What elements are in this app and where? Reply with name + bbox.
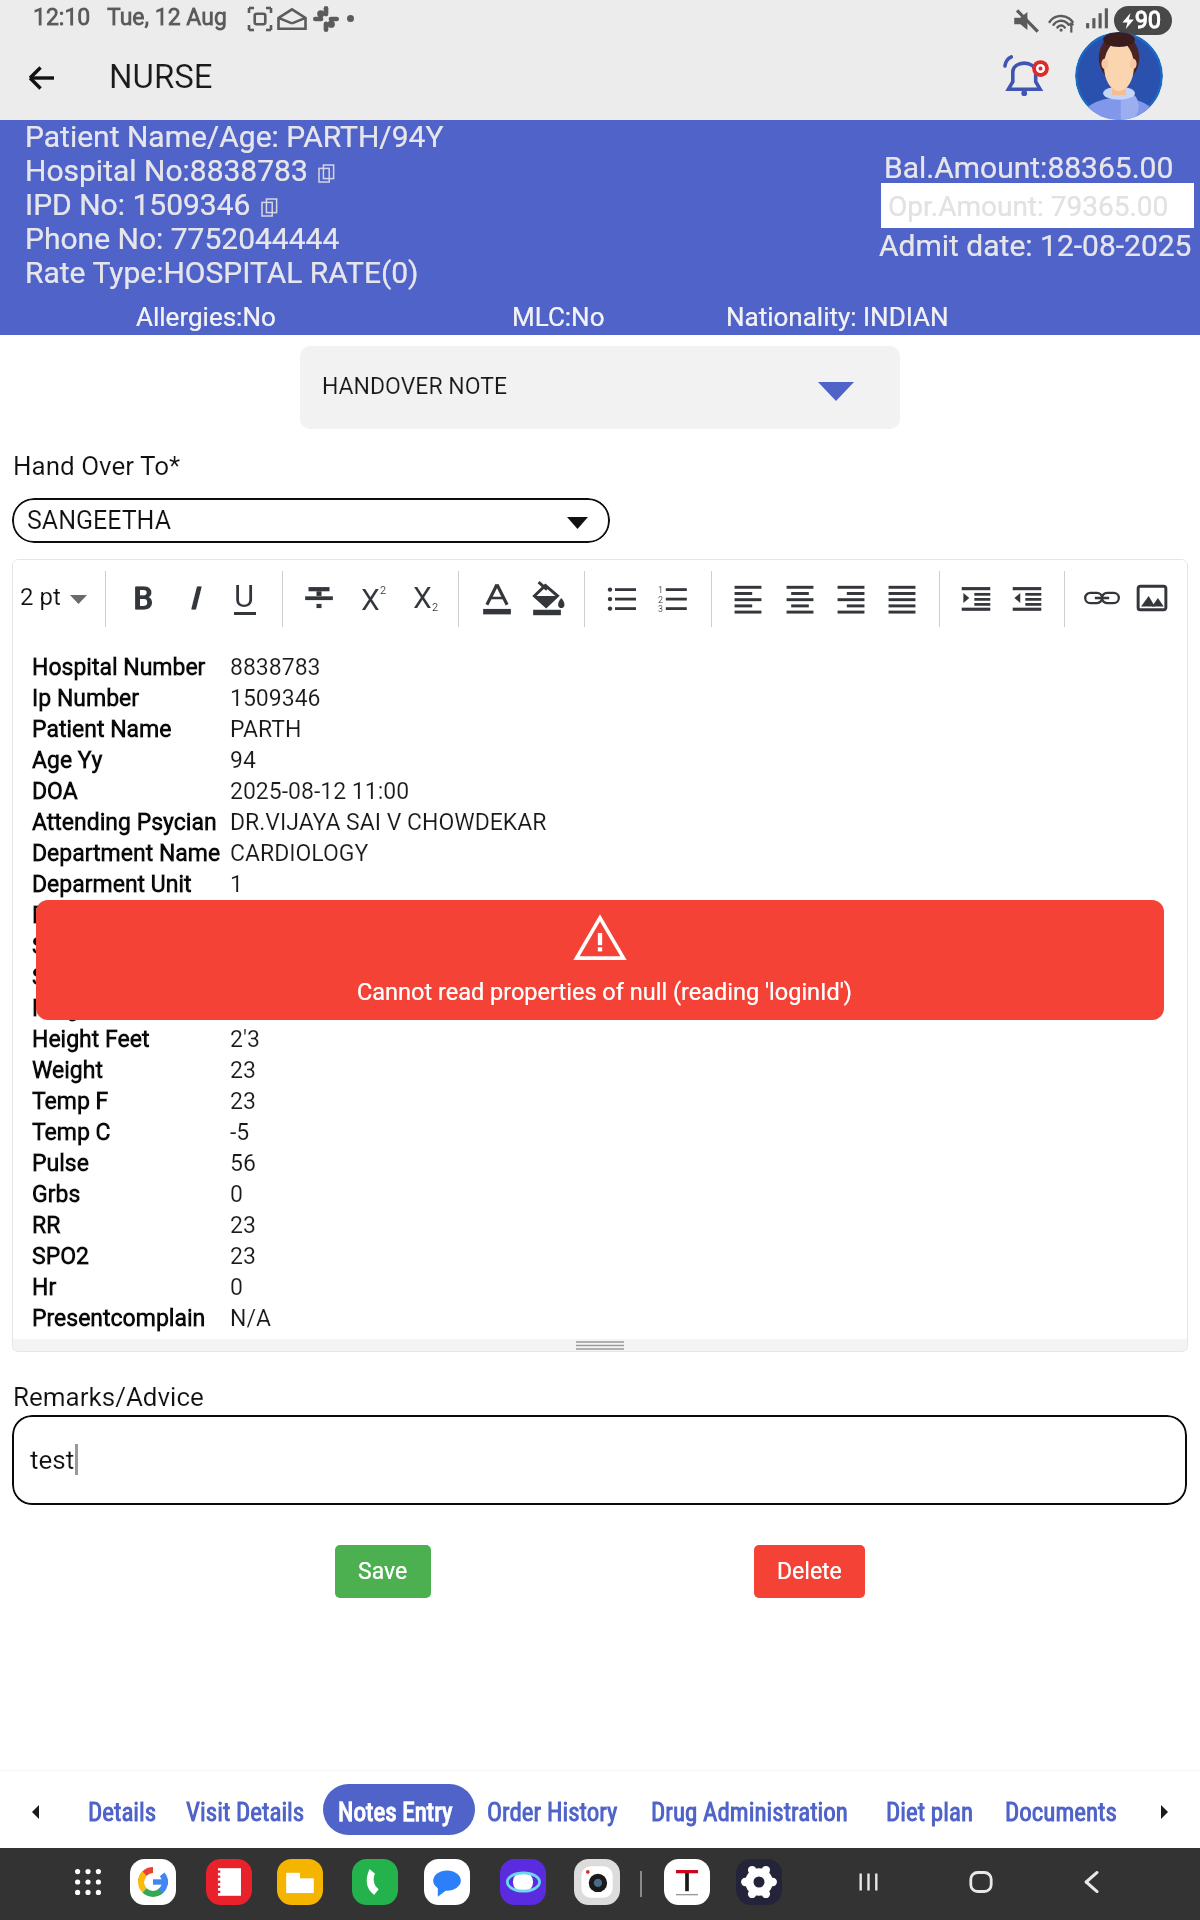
staticText: 23: [230, 1088, 256, 1115]
staticText: 1509346: [230, 685, 321, 712]
staticText: -5: [230, 1119, 250, 1146]
button[interactable]: Superscript: [352, 577, 394, 619]
button[interactable]: Profile: [1075, 32, 1163, 120]
staticText: Save: [358, 1558, 408, 1585]
button[interactable]: Align right: [830, 577, 872, 619]
staticText: 23: [230, 1243, 256, 1270]
button[interactable]: Align left: [727, 577, 769, 619]
staticText: PARTH: [230, 716, 302, 743]
staticText: 2: [432, 601, 439, 614]
button[interactable]: Settings: [736, 1859, 782, 1905]
staticText: RR: [32, 1212, 61, 1239]
button[interactable]: Delete: [754, 1545, 865, 1598]
staticText: 2 pt: [20, 583, 61, 611]
staticText: Remarks/Advice: [13, 1382, 204, 1412]
staticText: Weight: [32, 1057, 103, 1084]
button[interactable]: My Files: [277, 1859, 323, 1905]
button[interactable]: test: [12, 1415, 1187, 1505]
staticText: Age Yy: [32, 747, 103, 774]
button[interactable]: Subscript: [404, 577, 446, 619]
staticText: Hand Over To*: [13, 451, 181, 481]
staticText: B: [134, 580, 154, 616]
button[interactable]: Tesla: [664, 1859, 710, 1905]
staticText: U: [234, 578, 255, 614]
staticText: Opr.Amount: 79365.00: [888, 190, 1169, 223]
staticText: 3: [658, 604, 664, 615]
staticText: N/A: [230, 1305, 271, 1332]
button[interactable]: Recents: [852, 1865, 886, 1899]
staticText: test: [30, 1445, 75, 1475]
button[interactable]: Notes: [206, 1859, 252, 1905]
button[interactable]: Order History: [477, 1784, 608, 1835]
button[interactable]: Scroll tabs left: [16, 1789, 56, 1829]
button[interactable]: Back: [1076, 1865, 1110, 1899]
button[interactable]: Diet plan: [876, 1784, 964, 1835]
button[interactable]: Insert image: [1131, 577, 1173, 619]
staticText: 1: [230, 871, 243, 898]
staticText: 8838783: [230, 654, 321, 681]
button[interactable]: Scroll tabs right: [1145, 1789, 1185, 1829]
staticText: 23: [230, 1057, 256, 1084]
button[interactable]: Apps: [75, 1869, 101, 1895]
button[interactable]: Details: [78, 1784, 147, 1835]
staticText: Temp C: [32, 1119, 111, 1146]
button[interactable]: Visit Details: [176, 1784, 295, 1835]
staticText: 70: [230, 995, 256, 1022]
button[interactable]: Google: [130, 1859, 176, 1905]
staticText: 94: [230, 747, 256, 774]
staticText: Patient Name/Age: PARTH/94Y: [25, 119, 444, 154]
button[interactable]: Numbered list: [651, 577, 693, 619]
button[interactable]: Strikethrough: [298, 577, 340, 619]
button[interactable]: Italic: [172, 577, 214, 619]
staticText: Height Cms: [32, 995, 153, 1022]
button[interactable]: Back: [18, 54, 66, 102]
staticText: Hospital Number: [32, 654, 206, 681]
button[interactable]: Documents: [995, 1784, 1107, 1835]
staticText: Allergies:No: [136, 302, 276, 332]
button[interactable]: Highlight colour: [526, 577, 568, 619]
button[interactable]: Internet: [500, 1859, 546, 1905]
staticText: DOA: [32, 778, 78, 805]
button[interactable]: Decrease indent: [1006, 577, 1048, 619]
button[interactable]: Underline: [224, 577, 266, 619]
button[interactable]: Increase indent: [955, 577, 997, 619]
staticText: Documents: [1005, 1798, 1117, 1827]
staticText: 2025-08-12 11:00: [230, 778, 410, 805]
staticText: Payor Name: [32, 902, 158, 929]
button[interactable]: HANDOVER NOTE: [300, 346, 900, 429]
button[interactable]: Messages: [424, 1859, 470, 1905]
button[interactable]: Home: [964, 1865, 998, 1899]
button[interactable]: 2 pt: [16, 577, 100, 621]
staticText: Bal.Amount:88365.00: [884, 150, 1174, 185]
button[interactable]: Notifications: [1004, 54, 1048, 98]
button[interactable]: Drug Administration: [641, 1784, 838, 1835]
staticText: 2: [658, 595, 664, 606]
staticText: Presentcomplain: [32, 1305, 206, 1332]
button[interactable]: Notes Entry: [323, 1784, 475, 1835]
button[interactable]: Camera: [574, 1859, 620, 1905]
staticText: 12:10: [33, 4, 91, 31]
button[interactable]: Justify: [881, 577, 923, 619]
staticText: Department Name: [32, 840, 221, 867]
staticText: B: [133, 580, 153, 616]
staticText: Drug Administration: [651, 1798, 848, 1827]
staticText: 2'3: [230, 1026, 260, 1053]
staticText: HANDOVER NOTE: [322, 373, 508, 400]
button[interactable]: Bulleted list: [601, 577, 643, 619]
staticText: Patient Name: [32, 716, 172, 743]
staticText: 2: [380, 584, 387, 597]
staticText: 90: [1135, 7, 1161, 34]
button[interactable]: Text colour: [476, 577, 518, 619]
staticText: 0: [230, 1181, 243, 1208]
button[interactable]: Bold: [122, 577, 164, 619]
button[interactable]: Insert link: [1081, 577, 1123, 619]
button[interactable]: Align centre: [779, 577, 821, 619]
staticText: X: [413, 580, 432, 615]
button[interactable]: Phone: [352, 1859, 398, 1905]
staticText: 56: [230, 1150, 256, 1177]
button[interactable]: SANGEETHA: [12, 498, 610, 543]
button[interactable]: Save: [335, 1545, 431, 1598]
staticText: Tue, 12 Aug: [107, 4, 227, 31]
